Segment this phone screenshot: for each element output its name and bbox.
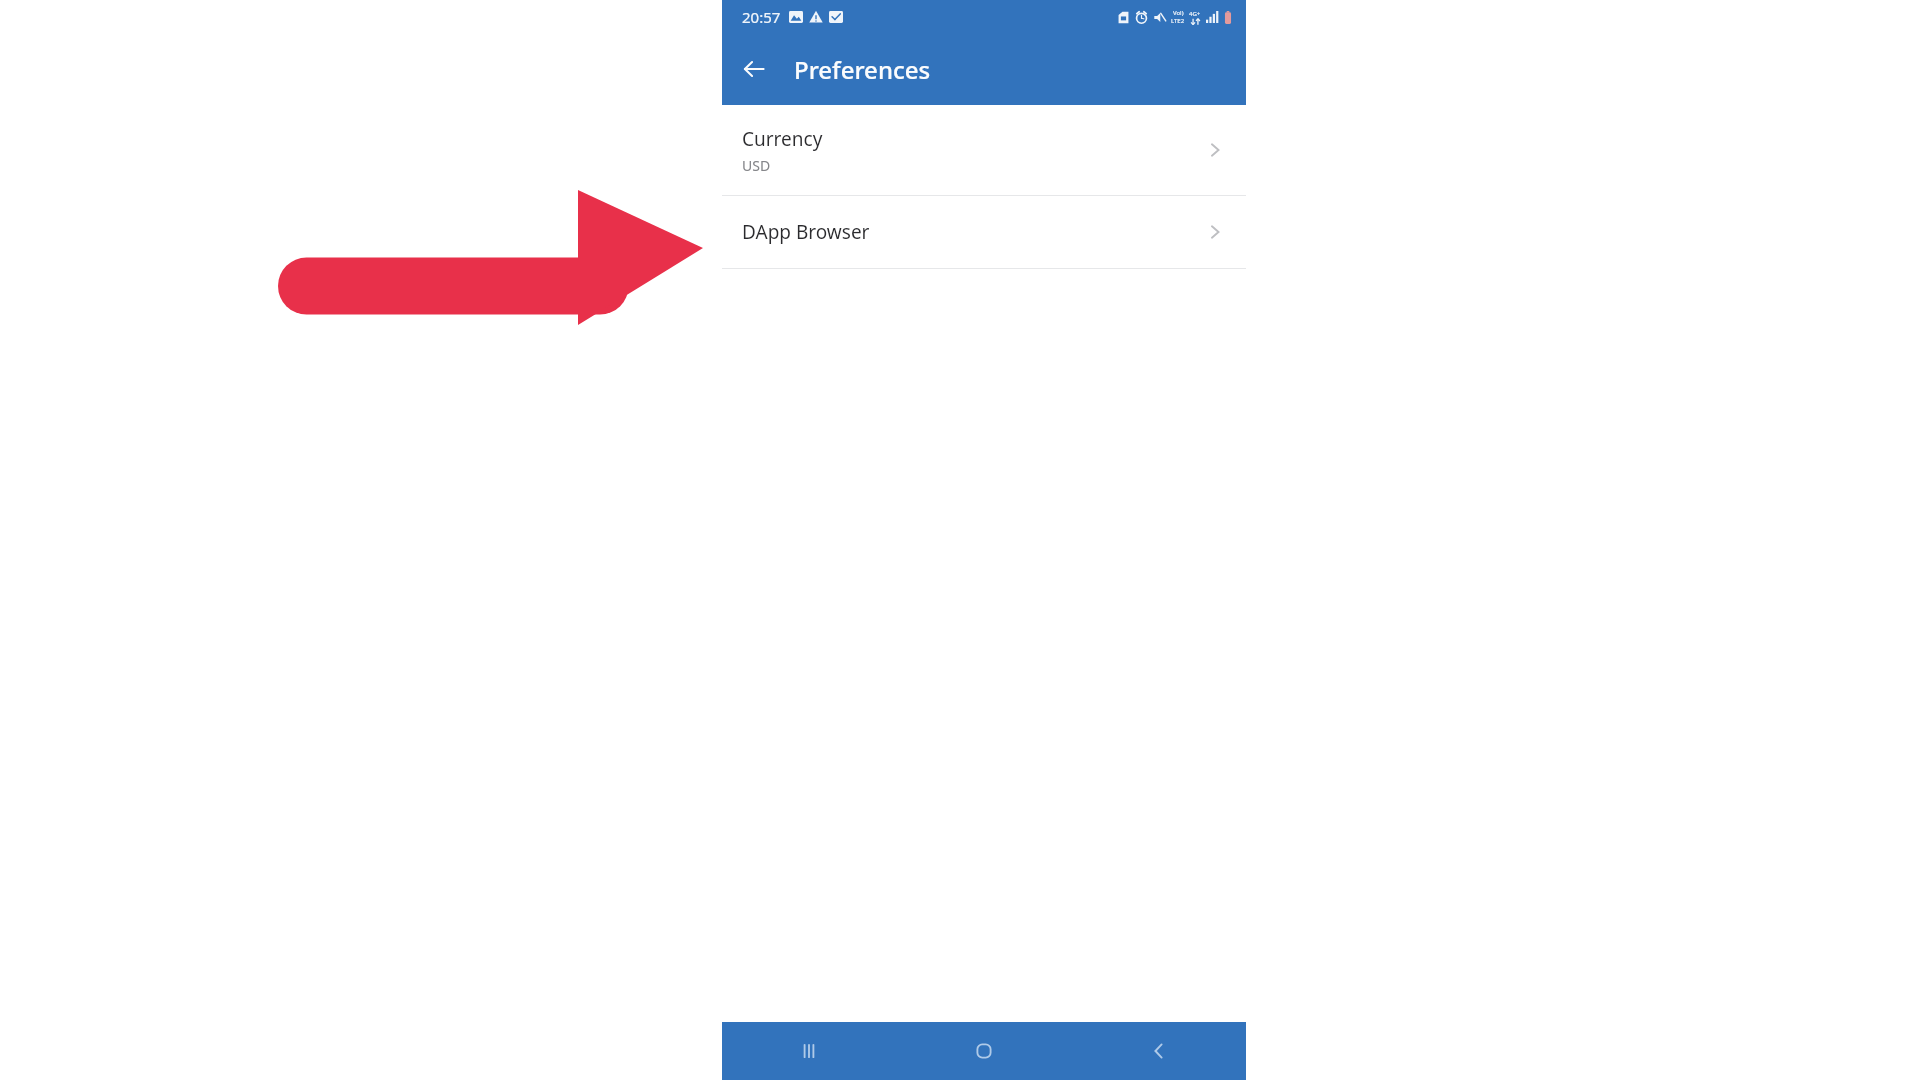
staticText: USD (742, 156, 771, 175)
staticText: 4G+ (1189, 10, 1201, 18)
staticText: DApp Browser (742, 219, 870, 245)
staticText: Vol) (1173, 9, 1184, 17)
staticText: Preferences (794, 53, 931, 86)
button[interactable]: Home (896, 1022, 1071, 1080)
button[interactable]: Recent apps (722, 1022, 896, 1080)
staticText: LTE2 (1171, 17, 1185, 25)
button[interactable]: Currency (722, 105, 1246, 195)
button[interactable]: Back (730, 45, 778, 93)
button[interactable]: Back (1071, 1022, 1246, 1080)
staticText: 20:57 (742, 7, 781, 27)
staticText: Currency (742, 126, 823, 152)
button[interactable]: DApp Browser (722, 196, 1246, 268)
